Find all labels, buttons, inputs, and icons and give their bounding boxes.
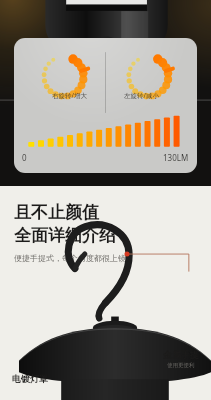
- staticText: 且不止颜值: [14, 202, 99, 223]
- staticText: 金属手提: [163, 349, 199, 360]
- staticText: 右旋转/增大: [52, 91, 87, 100]
- staticText: 左旋转/减小: [124, 91, 159, 100]
- button[interactable]: 右旋转/增大: [14, 38, 197, 173]
- staticText: 130LM: [163, 152, 189, 163]
- staticText: 电镀灯罩: [12, 373, 48, 384]
- staticText: 全面详细介绍: [14, 225, 116, 246]
- staticText: 便捷手提式，每个角度都很上镜: [14, 253, 126, 263]
- button[interactable]: 电镀灯罩: [12, 373, 48, 384]
- staticText: 使用更便利: [167, 362, 195, 369]
- staticText: 0: [22, 152, 27, 163]
